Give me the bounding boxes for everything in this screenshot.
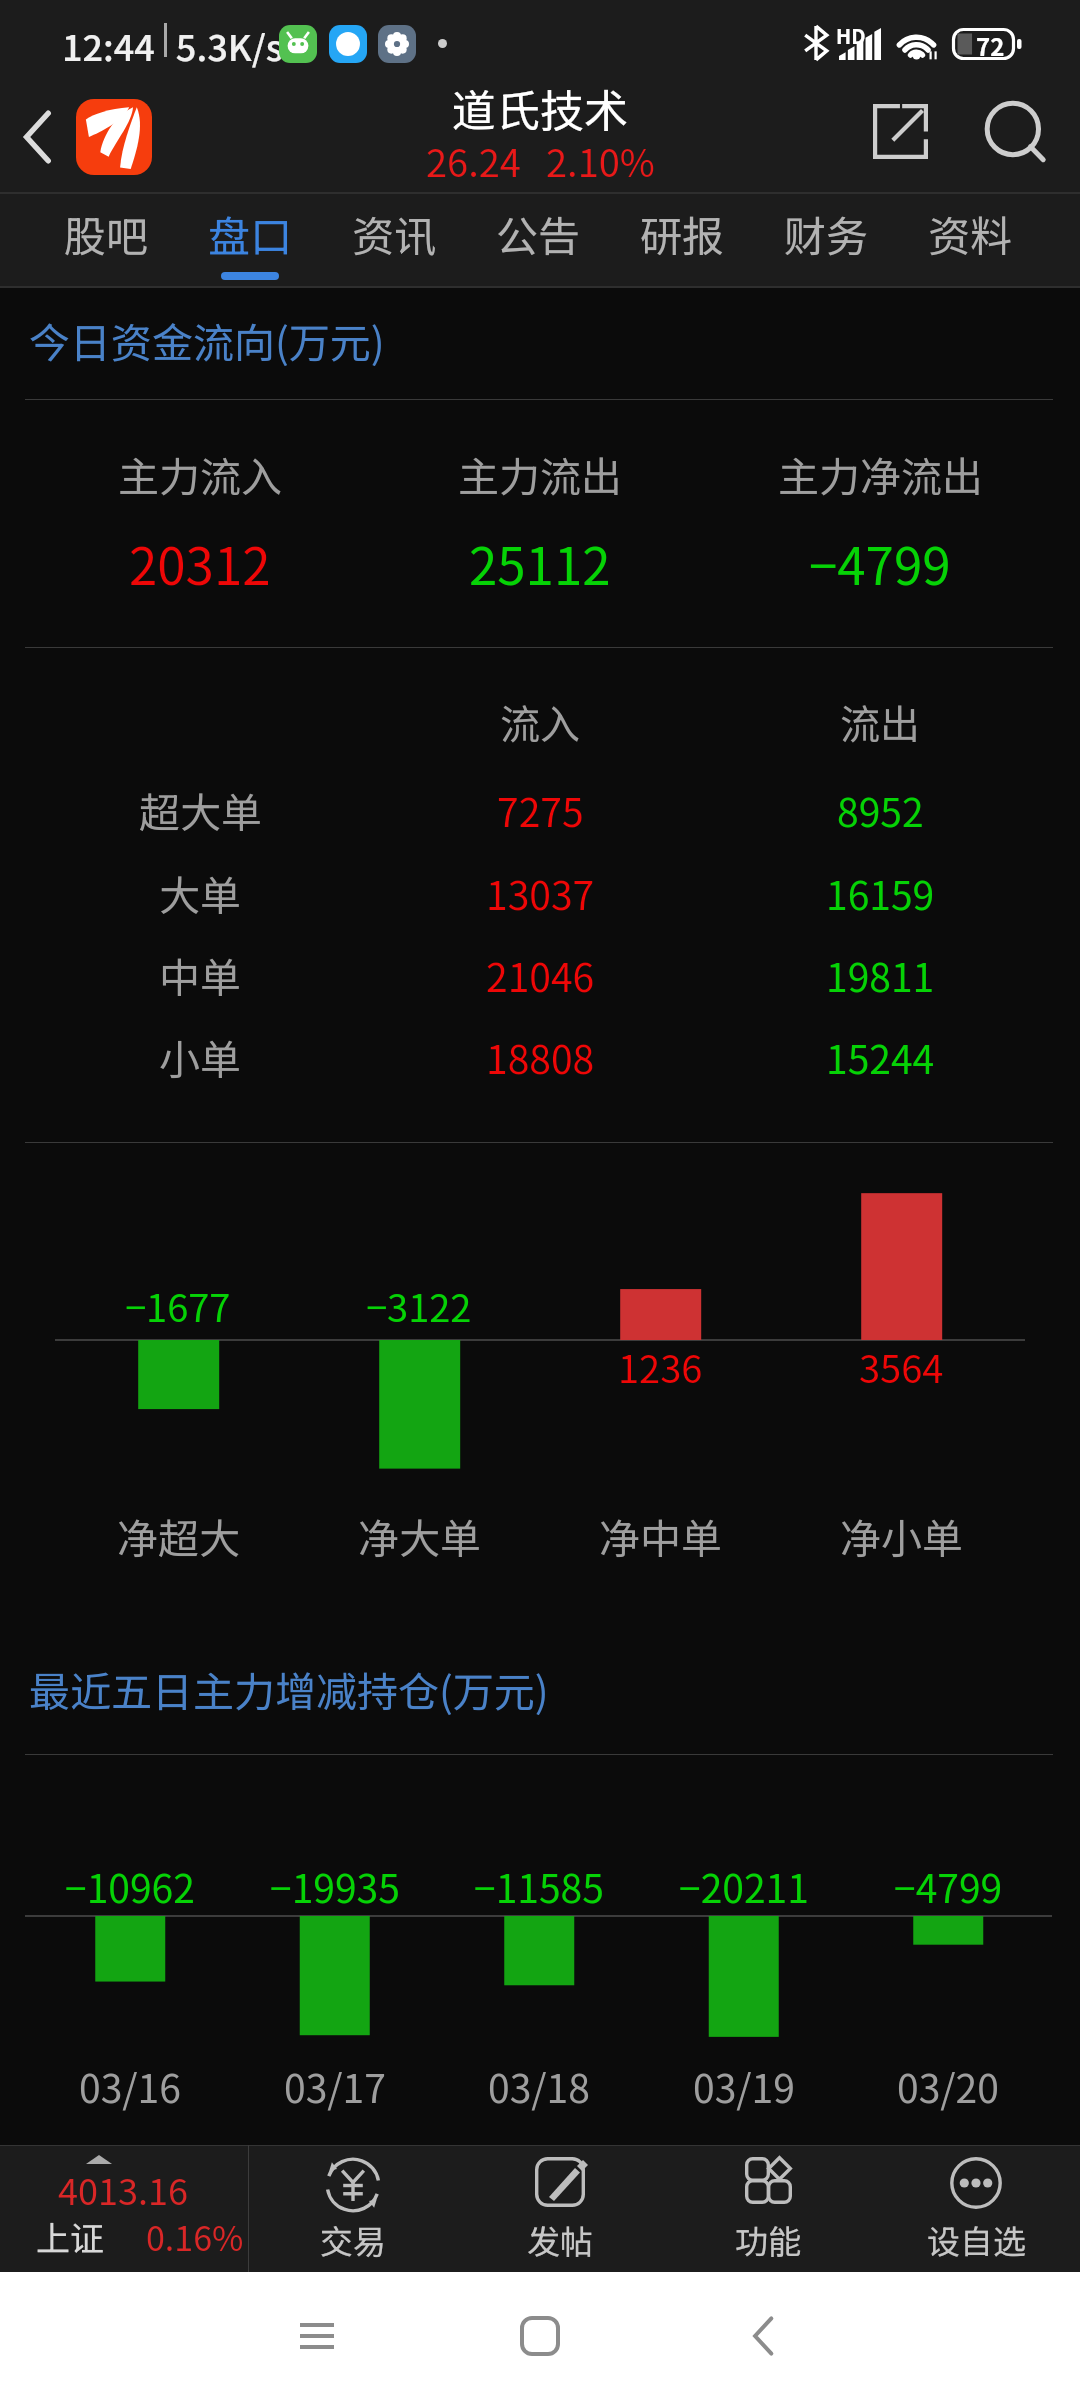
staticText: 流入 [500,693,580,751]
staticText: 流出 [840,693,920,751]
button[interactable]: Search [963,80,1067,184]
staticText: 主力净流出 [778,444,983,503]
staticText: 上证 [36,2212,104,2261]
staticText: 5.3K/s [176,19,283,71]
button[interactable]: Back [715,2288,811,2384]
staticText: 03/17 [284,2058,386,2114]
staticText: 1236 [618,1339,703,1394]
staticText: 03/19 [693,2058,795,2114]
staticText: 研报 [640,203,725,264]
staticText: 盘口 [208,203,293,264]
staticText: 03/16 [79,2058,181,2114]
staticText: 12:44 [62,19,155,71]
staticText: −4799 [809,526,951,600]
staticText: 72 [976,28,1005,63]
staticText: 公告 [496,203,581,264]
staticText: 小单 [159,1027,241,1086]
staticText: 中单 [159,945,241,1004]
button[interactable]: 盘口 [178,192,322,288]
staticText: 3564 [859,1339,944,1394]
staticText: 超大单 [139,780,262,839]
staticText: 今日资金流向(万元) [29,310,385,369]
staticText: 功能 [735,2216,801,2264]
staticText: 净大单 [358,1506,481,1565]
staticText: 设自选 [927,2216,1026,2264]
staticText: −11585 [474,1858,604,1914]
staticText: 交易 [320,2216,386,2264]
staticText: 18808 [486,1029,595,1085]
staticText: 最近五日主力增减持仓(万元) [29,1659,549,1718]
button[interactable]: Post [456,2145,664,2272]
staticText: 资讯 [352,203,437,264]
staticText: 13037 [486,865,595,921]
button[interactable]: 4013.16 [0,2145,248,2272]
staticText: −19935 [270,1858,400,1914]
staticText: 净小单 [840,1506,963,1565]
button[interactable]: 股吧 [34,192,178,288]
staticText: 净中单 [599,1506,722,1565]
staticText: −3122 [366,1278,472,1333]
staticText: 0.16% [146,2212,244,2261]
staticText: 21046 [486,947,595,1003]
staticText: 大单 [159,863,241,922]
staticText: 20312 [129,526,271,600]
staticText: 8952 [837,782,924,838]
staticText: 2.10% [546,133,655,188]
staticText: 发帖 [527,2216,593,2264]
button[interactable]: Trade [249,2145,456,2272]
staticText: 03/18 [488,2058,590,2114]
button[interactable]: Functions [664,2145,872,2272]
staticText: −20211 [679,1858,809,1914]
staticText: 4013.16 [58,2163,188,2215]
button[interactable]: 资料 [898,192,1042,288]
staticText: 03/20 [897,2058,999,2114]
staticText: 19811 [826,947,935,1003]
staticText: 财务 [784,203,869,264]
staticText: 主力流入 [118,444,282,503]
button[interactable]: Home [492,2288,588,2384]
staticText: 净超大 [117,1506,240,1565]
button[interactable]: Open externally [848,79,952,183]
staticText: 主力流出 [458,444,622,503]
button[interactable]: App home [76,99,152,175]
staticText: 道氏技术 [452,76,628,140]
button[interactable]: Recent apps [269,2288,365,2384]
button[interactable]: 财务 [754,192,898,288]
staticText: −10962 [65,1858,195,1914]
button[interactable]: Watchlist [872,2145,1080,2272]
staticText: HD [836,21,866,50]
staticText: 资料 [928,203,1013,264]
button[interactable]: 研报 [610,192,754,288]
staticText: 股吧 [64,203,149,264]
staticText: 7275 [497,782,584,838]
staticText: 15244 [826,1029,935,1085]
button[interactable]: 公告 [466,192,610,288]
staticText: 16159 [826,865,935,921]
button[interactable]: 资讯 [322,192,466,288]
button[interactable]: Back [0,82,76,192]
staticText: −1677 [125,1278,231,1333]
staticText: 26.24 [426,133,521,188]
staticText: 25112 [469,526,611,600]
staticText: −4799 [894,1858,1003,1914]
